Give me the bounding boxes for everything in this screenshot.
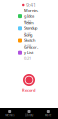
button[interactable]: Library <box>19 108 39 119</box>
staticText: Library <box>25 113 33 117</box>
staticText: More <box>45 113 52 117</box>
button[interactable]: Record <box>22 74 36 93</box>
staticText: 0:42 <box>24 19 31 24</box>
staticText: Morning Idea <box>24 8 38 18</box>
staticText: Grocery List <box>24 44 38 55</box>
staticText: Record <box>22 87 36 93</box>
button[interactable]: Morning Idea <box>0 10 58 22</box>
staticText: 2:15 <box>24 31 31 36</box>
staticText: 1:08 <box>24 43 31 49</box>
staticText: Memos <box>5 113 14 117</box>
button[interactable]: Song Sketch <box>0 34 58 47</box>
button[interactable]: Memos <box>0 108 19 119</box>
staticText: 9:41 <box>26 1 36 9</box>
staticText: 0:21 <box>24 56 31 61</box>
button[interactable]: More <box>39 108 58 119</box>
button[interactable]: Team Standup <box>0 22 58 34</box>
staticText: Team Standup <box>24 20 37 31</box>
button[interactable]: Grocery List <box>0 47 58 59</box>
staticText: Song Sketch <box>24 32 35 43</box>
